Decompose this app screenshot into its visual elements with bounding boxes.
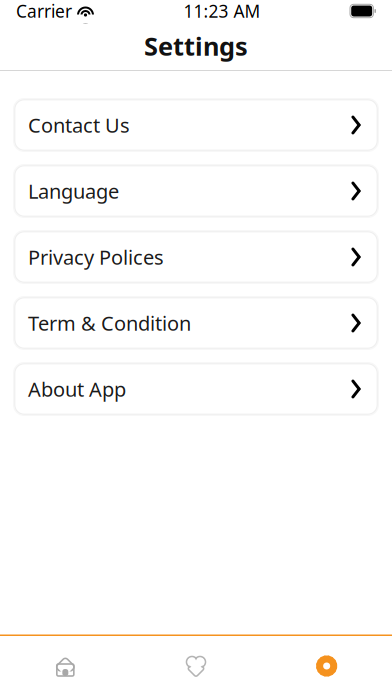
staticText: Carrier bbox=[16, 0, 72, 22]
button[interactable]: Contact Us bbox=[13, 98, 379, 152]
staticText: Privacy Polices bbox=[28, 244, 164, 270]
button[interactable]: Privacy Polices bbox=[13, 230, 379, 284]
staticText: Contact Us bbox=[28, 112, 130, 138]
button[interactable]: Settings bbox=[261, 636, 392, 696]
button[interactable]: Language bbox=[13, 164, 379, 218]
button[interactable]: Home bbox=[0, 636, 131, 696]
staticText: Language bbox=[28, 178, 119, 204]
staticText: 11:23 AM bbox=[183, 0, 260, 22]
button[interactable]: Term & Condition bbox=[13, 296, 379, 350]
staticText: Settings bbox=[144, 29, 248, 63]
staticText: About App bbox=[28, 376, 126, 402]
staticText: Term & Condition bbox=[28, 310, 191, 336]
button[interactable]: Favorites bbox=[131, 636, 261, 696]
button[interactable]: About App bbox=[13, 362, 379, 416]
